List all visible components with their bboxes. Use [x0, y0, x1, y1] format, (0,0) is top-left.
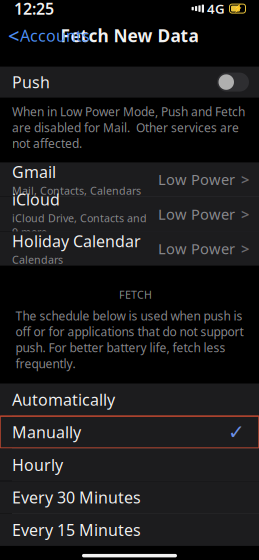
- staticText: >: [241, 239, 249, 258]
- staticText: Fetch New Data: [60, 24, 198, 47]
- staticText: Accounts: [20, 25, 90, 46]
- button[interactable]: Push: [217, 73, 249, 92]
- button[interactable]: Gmail: [0, 162, 259, 196]
- button[interactable]: Holiday Calendar: [0, 232, 259, 266]
- staticText: When in Low Power Mode, Push and Fetch a…: [12, 104, 245, 151]
- staticText: ✓: [228, 421, 245, 443]
- staticText: Gmail: [12, 161, 56, 182]
- staticText: Hourly: [12, 454, 63, 475]
- staticText: Low Power: [158, 204, 235, 224]
- staticText: Mail, Contacts, Calendars: [12, 183, 141, 198]
- staticText: Automatically: [12, 389, 115, 410]
- staticText: Every 30 Minutes: [12, 487, 141, 508]
- staticText: Manually: [12, 421, 81, 443]
- staticText: Calendars: [12, 253, 63, 267]
- button[interactable]: Automatically: [0, 383, 259, 415]
- staticText: FETCH: [119, 288, 152, 302]
- staticText: >: [241, 170, 249, 189]
- staticText: The schedule below is used when push is …: [15, 308, 243, 371]
- staticText: 4G: [207, 0, 225, 17]
- staticText: Every 15 Minutes: [12, 519, 141, 540]
- staticText: ⚡: [232, 4, 242, 13]
- button[interactable]: Manually: [0, 416, 259, 448]
- staticText: Low Power: [158, 239, 235, 258]
- staticText: >: [241, 204, 249, 224]
- button[interactable]: Hourly: [0, 449, 259, 481]
- staticText: Low Power: [158, 170, 235, 189]
- button[interactable]: iCloud: [0, 197, 259, 231]
- button[interactable]: Every 15 Minutes: [0, 514, 259, 546]
- staticText: 12:25: [14, 0, 54, 19]
- staticText: iCloud Drive, Contacts and 9 more…: [12, 211, 147, 239]
- staticText: Push: [12, 71, 50, 93]
- staticText: iCloud: [12, 189, 60, 210]
- button[interactable]: Every 30 Minutes: [0, 481, 259, 513]
- staticText: <: [8, 22, 19, 49]
- staticText: Holiday Calendar: [12, 230, 141, 252]
- button[interactable]: <: [0, 22, 96, 50]
